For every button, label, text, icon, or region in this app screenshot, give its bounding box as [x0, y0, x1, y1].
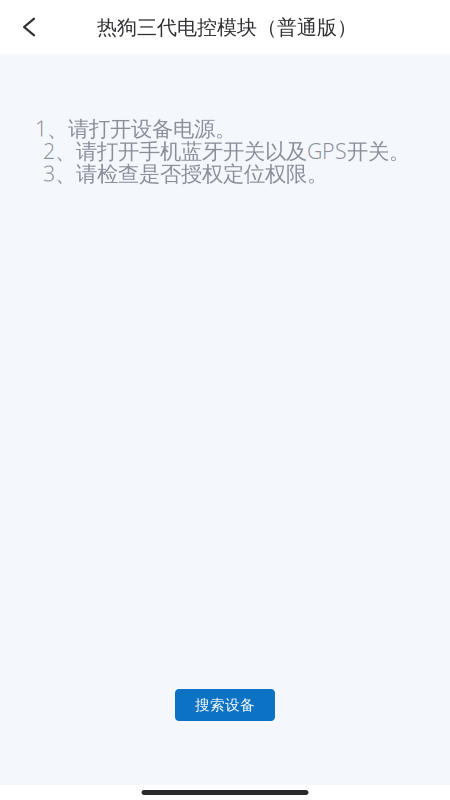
staticText: 热狗三代电控模块（普通版） [97, 15, 357, 40]
staticText: 2、请打开手机蓝牙开关以及GPS开关。 [43, 137, 410, 165]
staticText: 1、请打开设备电源。 [35, 114, 236, 142]
button[interactable]: 搜索设备 [175, 689, 275, 721]
staticText: 搜索设备 [195, 696, 255, 714]
staticText: 3、请检查是否授权定位权限。 [43, 159, 328, 187]
button[interactable]: Back [7, 5, 51, 49]
